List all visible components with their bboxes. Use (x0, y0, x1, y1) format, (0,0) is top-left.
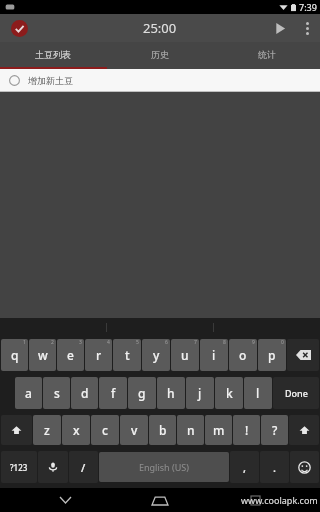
button[interactable]: b (149, 415, 176, 445)
button[interactable]: a (15, 377, 42, 409)
button[interactable]: Start timer (266, 14, 294, 42)
staticText: 增加新土豆 (28, 75, 73, 86)
button[interactable]: z (33, 415, 61, 445)
button[interactable]: d (71, 377, 98, 409)
staticText: k (226, 385, 233, 401)
button[interactable]: r (85, 339, 112, 371)
staticText: l (256, 385, 260, 401)
staticText: 统计 (258, 49, 276, 60)
button[interactable]: 增加新土豆 (0, 69, 320, 91)
button[interactable]: i (200, 339, 228, 371)
staticText: m (213, 422, 225, 438)
button[interactable]: 历史 (106, 42, 213, 67)
button[interactable]: v (120, 415, 148, 445)
button[interactable]: f (99, 377, 127, 409)
button[interactable]: e (57, 339, 84, 371)
staticText: English (US) (139, 461, 189, 473)
button[interactable]: Done (273, 377, 319, 409)
button[interactable]: 土豆列表 (0, 42, 106, 67)
staticText: z (44, 422, 50, 438)
staticText: s (54, 385, 60, 401)
staticText: b (159, 422, 167, 438)
button[interactable]: Backspace (287, 339, 319, 371)
staticText: e (67, 347, 74, 363)
staticText: 3 (79, 339, 82, 346)
staticText: 5 (136, 339, 139, 346)
staticText: 历史 (151, 49, 169, 60)
staticText: a (25, 385, 32, 401)
staticText: 25:00 (143, 19, 177, 37)
staticText: g (138, 385, 146, 401)
button[interactable]: More options (294, 15, 320, 41)
staticText: o (239, 347, 247, 363)
button[interactable]: x (62, 415, 90, 445)
button[interactable]: ! (233, 415, 260, 445)
staticText: q (11, 347, 19, 363)
staticText: 4 (107, 339, 110, 346)
staticText: n (187, 422, 195, 438)
staticText: u (181, 347, 189, 363)
staticText: 2 (51, 339, 54, 346)
button[interactable]: n (177, 415, 204, 445)
staticText: w (38, 347, 48, 363)
staticText: ?123 (10, 462, 28, 473)
button[interactable]: t (113, 339, 141, 371)
button[interactable]: Emoji (290, 451, 319, 483)
staticText: ! (245, 422, 249, 438)
staticText: r (96, 347, 102, 363)
staticText: p (268, 347, 276, 363)
button[interactable]: j (186, 377, 214, 409)
button[interactable]: l (244, 377, 272, 409)
button[interactable]: w (29, 339, 56, 371)
button[interactable]: s (43, 377, 70, 409)
staticText: 土豆列表 (35, 49, 71, 60)
button[interactable]: m (205, 415, 232, 445)
staticText: x (73, 422, 80, 438)
staticText: www.coolapk.com (241, 494, 318, 506)
button[interactable]: q (1, 339, 28, 371)
staticText: 7:39 (299, 1, 317, 13)
staticText: 9 (252, 339, 255, 346)
staticText: c (102, 422, 108, 438)
staticText: 6 (165, 339, 168, 346)
button[interactable]: h (157, 377, 185, 409)
button[interactable]: o (229, 339, 257, 371)
button[interactable]: ? (261, 415, 288, 445)
button[interactable]: y (142, 339, 170, 371)
button[interactable]: k (215, 377, 243, 409)
button[interactable]: p (258, 339, 286, 371)
staticText: 8 (223, 339, 226, 346)
staticText: y (153, 347, 160, 363)
staticText: j (198, 385, 202, 401)
button[interactable]: English (US) (99, 452, 229, 482)
button[interactable]: Home (130, 488, 190, 512)
staticText: i (212, 347, 216, 363)
button[interactable]: / (69, 451, 98, 483)
button[interactable]: g (128, 377, 156, 409)
staticText: h (167, 385, 175, 401)
button[interactable]: Voice input (38, 451, 68, 483)
staticText: 0 (281, 339, 284, 346)
button[interactable]: ?123 (1, 451, 37, 483)
staticText: 7 (194, 339, 197, 346)
staticText: d (81, 385, 89, 401)
staticText: . (273, 460, 276, 475)
staticText: ? (272, 422, 278, 438)
button[interactable]: Shift (289, 415, 319, 445)
button[interactable]: Recent apps (225, 488, 285, 512)
staticText: t (125, 347, 130, 363)
button[interactable]: c (91, 415, 119, 445)
button[interactable]: u (171, 339, 199, 371)
button[interactable]: Shift (1, 415, 32, 445)
staticText: , (243, 460, 247, 475)
staticText: 1 (23, 339, 26, 346)
button[interactable]: 统计 (213, 42, 320, 67)
button[interactable]: , (230, 451, 259, 483)
staticText: / (81, 460, 86, 475)
button[interactable]: . (260, 451, 289, 483)
button[interactable]: Hide keyboard (35, 488, 95, 512)
button[interactable]: App logo (8, 17, 30, 39)
